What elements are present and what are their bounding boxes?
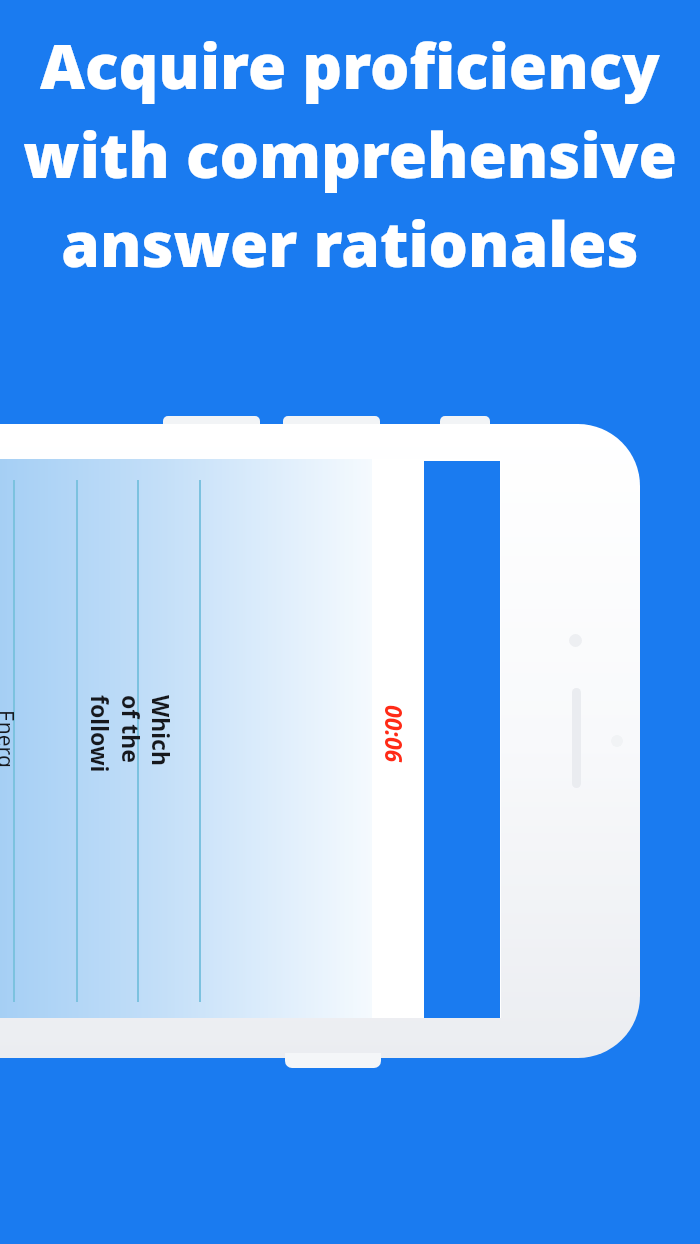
button[interactable]: Energy storage [194,480,256,1002]
button[interactable]: Protect cell organelles [132,480,194,1002]
button[interactable]: None of these [70,480,132,1002]
staticText: Which of the following is one of the pri… [89,695,177,783]
button[interactable]: Maintain genetic fidelity [9,480,71,1002]
staticText: answer rationales [61,201,639,285]
staticText: with comprehensive [23,112,677,196]
staticText: Energy storage [0,710,20,772]
staticText: 00:06 [379,705,410,763]
staticText: Acquire proficiency [40,23,660,107]
